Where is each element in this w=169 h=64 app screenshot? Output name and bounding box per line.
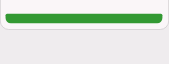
button[interactable]: Progress xyxy=(0,13,169,24)
